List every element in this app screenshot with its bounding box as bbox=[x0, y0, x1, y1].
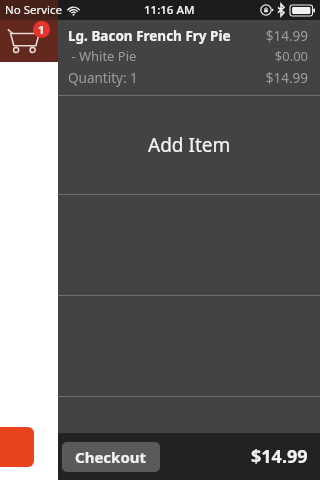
staticText: Lg. Bacon French Fry Pie bbox=[68, 27, 265, 45]
button[interactable]: Checkout bbox=[62, 442, 160, 472]
staticText: Quantity: 1 bbox=[68, 69, 265, 87]
staticText: Add Item bbox=[148, 132, 231, 158]
staticText: 1 bbox=[38, 22, 45, 37]
button[interactable]: Lg. Bacon French Fry Pie bbox=[58, 20, 320, 95]
button[interactable]: Add Item bbox=[58, 96, 320, 194]
button[interactable]: Cart, 1 item bbox=[0, 0, 58, 62]
staticText: - White Pie bbox=[68, 47, 274, 65]
staticText: $0.00 bbox=[274, 47, 308, 65]
staticText: No Service bbox=[5, 2, 63, 18]
staticText: $14.99 bbox=[265, 27, 308, 45]
button[interactable]: Action bbox=[0, 427, 34, 467]
staticText: 11:16 AM bbox=[144, 2, 195, 18]
staticText: Checkout bbox=[75, 447, 147, 467]
staticText: $14.99 bbox=[265, 69, 308, 87]
staticText: $14.99 bbox=[251, 444, 308, 469]
